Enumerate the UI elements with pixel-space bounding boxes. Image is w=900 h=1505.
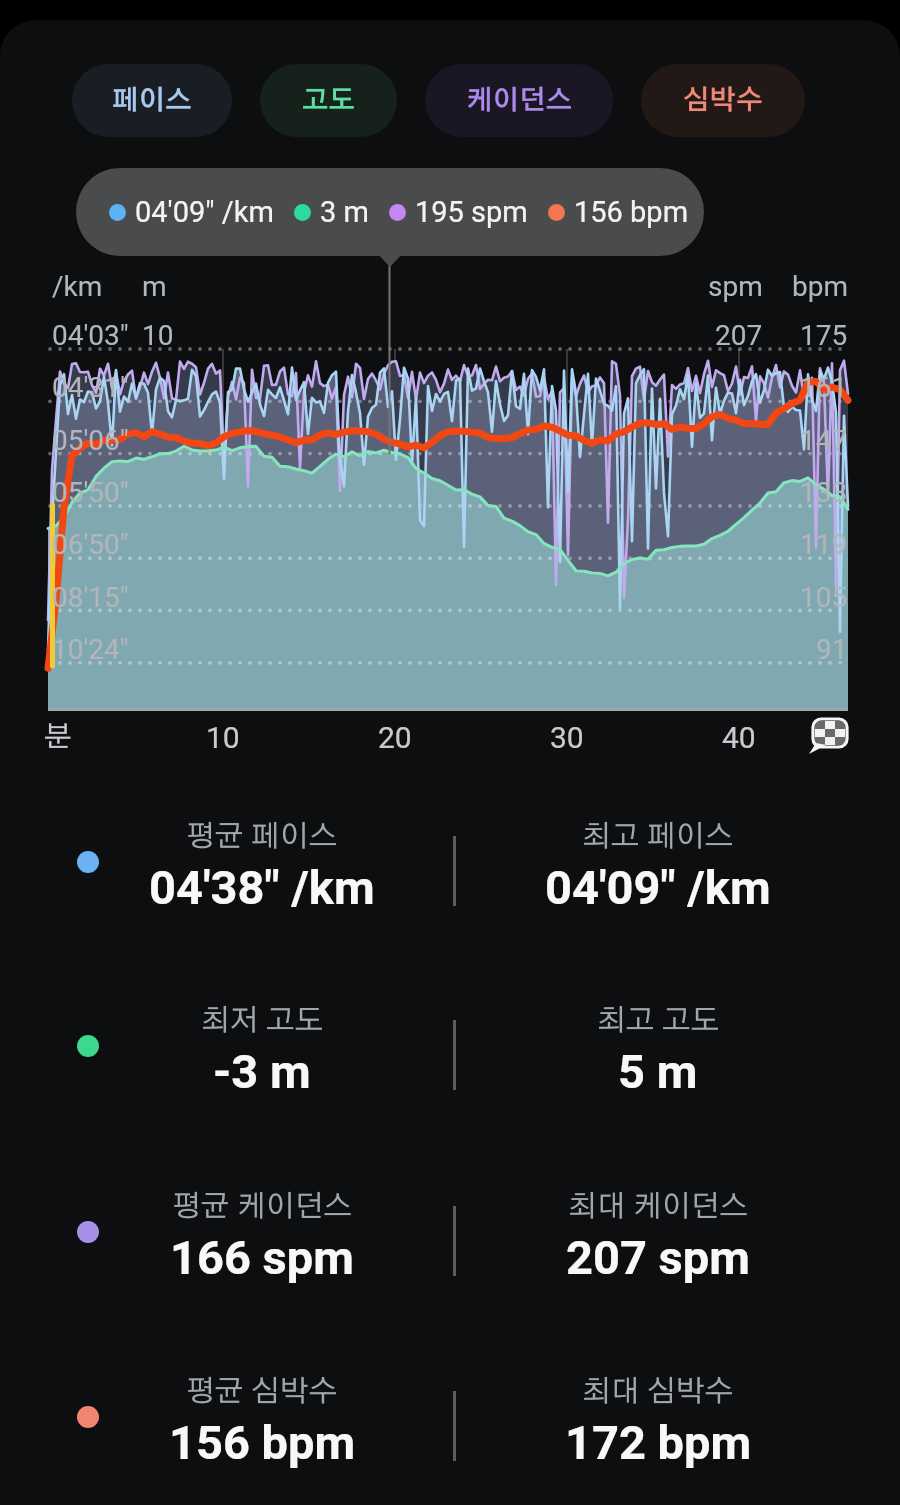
staticText: m <box>142 270 167 303</box>
staticText: 119 <box>800 528 848 561</box>
staticText: 166 spm <box>170 1230 354 1285</box>
staticText: /km <box>52 270 103 303</box>
staticText: 207 spm <box>566 1230 750 1285</box>
staticText: 10'24" <box>52 633 129 666</box>
staticText: 고도 <box>302 87 356 114</box>
staticText: 04'09" /km <box>135 195 274 229</box>
staticText: 40 <box>722 720 756 755</box>
staticText: spm <box>708 270 763 303</box>
button[interactable]: 페이스 <box>72 64 232 137</box>
staticText: 91 <box>816 633 848 666</box>
staticText: bpm <box>792 270 848 303</box>
staticText: 케이던스 <box>466 87 573 114</box>
staticText: 최저 고도 <box>201 1006 324 1036</box>
staticText: 105 <box>800 581 848 614</box>
staticText: 최고 고도 <box>597 1006 720 1036</box>
staticText: 평균 케이던스 <box>172 1192 353 1222</box>
staticText: 207 <box>715 319 763 352</box>
staticText: 05'50" <box>52 476 129 509</box>
staticText: 06'50" <box>52 528 129 561</box>
staticText: 05'06" <box>52 424 129 457</box>
staticText: 5 m <box>618 1044 698 1099</box>
staticText: 156 bpm <box>574 195 689 229</box>
staticText: 08'15" <box>52 581 129 614</box>
button[interactable]: 04'09" /km <box>76 168 704 256</box>
staticText: 페이스 <box>112 87 192 114</box>
staticText: 156 bpm <box>169 1415 356 1470</box>
staticText: 최대 심박수 <box>582 1377 734 1407</box>
button[interactable]: 고도 <box>260 64 397 137</box>
staticText: 04'31" <box>52 371 129 404</box>
staticText: 10 <box>206 720 240 755</box>
staticText: 04'03" <box>52 319 129 352</box>
staticText: 최고 페이스 <box>582 822 734 852</box>
staticText: 최대 케이던스 <box>568 1192 749 1222</box>
staticText: 분 <box>44 723 72 752</box>
staticText: 3 m <box>320 195 369 229</box>
staticText: 04'09" /km <box>545 860 771 915</box>
staticText: 평균 심박수 <box>186 1377 338 1407</box>
staticText: 172 bpm <box>565 1415 752 1470</box>
staticText: -3 m <box>213 1044 311 1099</box>
staticText: 161 <box>800 371 848 404</box>
button[interactable]: 케이던스 <box>425 64 613 137</box>
staticText: 04'38" /km <box>149 860 375 915</box>
staticText: 10 <box>142 319 174 352</box>
staticText: 195 spm <box>415 195 528 229</box>
staticText: 평균 페이스 <box>186 822 338 852</box>
button[interactable]: 심박수 <box>641 64 805 137</box>
staticText: 133 <box>800 476 848 509</box>
staticText: 147 <box>800 424 848 457</box>
staticText: 심박수 <box>683 87 763 114</box>
staticText: 175 <box>800 319 848 352</box>
staticText: 20 <box>378 720 412 755</box>
staticText: 30 <box>550 720 584 755</box>
